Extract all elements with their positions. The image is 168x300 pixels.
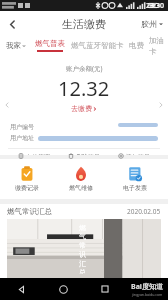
button[interactable]: Recent apps	[84, 278, 126, 300]
button[interactable]: 燃气维修	[64, 166, 98, 192]
button[interactable]: Next account	[156, 100, 166, 110]
staticText: jingyan.baidu.com	[132, 292, 163, 297]
button[interactable]: 燃	[7, 219, 161, 278]
staticText: 去缴费	[71, 104, 92, 113]
staticText: 12.32	[58, 75, 110, 102]
button[interactable]: 去缴费	[71, 104, 97, 113]
staticText: 23:30	[146, 1, 164, 11]
button[interactable]: 删除账号	[68, 153, 100, 155]
staticText: 2020.02.05	[127, 207, 161, 216]
button[interactable]: Back	[0, 12, 24, 36]
staticText: 燃	[79, 223, 86, 232]
staticText: 我家	[6, 41, 21, 50]
button[interactable]: 电费	[129, 41, 144, 50]
staticText: 添加账号	[126, 153, 150, 155]
staticText: Bai度知道	[131, 282, 163, 292]
button[interactable]: 燃气普表	[35, 39, 65, 52]
button[interactable]: 燃气常识汇总	[7, 204, 161, 219]
staticText: 燃气维修	[69, 184, 93, 192]
button[interactable]: 胶州	[141, 19, 163, 29]
staticText: 燃气普表	[35, 39, 65, 48]
staticText: 汇	[79, 259, 86, 268]
button[interactable]: Back	[0, 278, 42, 300]
button[interactable]: 电子发票	[118, 166, 152, 192]
staticText: 常	[79, 241, 86, 250]
staticText: 燃气常识汇总	[7, 207, 52, 216]
staticText: 气	[79, 232, 86, 241]
button[interactable]: 加油卡	[149, 36, 168, 55]
staticText: 缴费记录	[15, 184, 39, 192]
staticText: 用户地址	[10, 134, 34, 142]
button[interactable]: 燃气蓝牙智能卡	[71, 41, 124, 50]
button[interactable]: 缴费记录	[10, 166, 44, 192]
button[interactable]: Home	[42, 278, 84, 300]
staticText: 本地管理	[26, 153, 50, 155]
button[interactable]: 我家	[6, 41, 26, 50]
staticText: 用户编号	[10, 123, 34, 131]
button[interactable]: Previous account	[2, 100, 12, 110]
button[interactable]: 添加账号	[118, 153, 150, 155]
staticText: 识	[79, 250, 86, 259]
staticText: 电子发票	[123, 184, 147, 192]
staticText: 生活缴费	[62, 17, 106, 31]
staticText: 删除账号	[76, 153, 100, 155]
button[interactable]: 本地管理	[18, 153, 50, 155]
staticText: 账户余额(元)	[66, 64, 103, 73]
staticText: 胶州	[141, 19, 157, 29]
staticText: 总	[79, 268, 86, 274]
